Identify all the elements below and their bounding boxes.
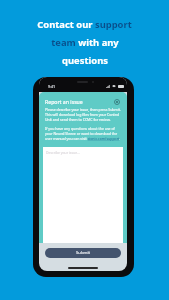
staticText: Describe your issue...	[46, 150, 80, 155]
staticText: If you have any questions about the use …	[45, 126, 123, 141]
button[interactable]: Submit	[45, 248, 121, 258]
button[interactable]: Close	[112, 97, 121, 106]
staticText: Submit	[76, 250, 90, 256]
staticText: 9:41	[48, 84, 56, 89]
staticText: Please describe your issue, then press S…	[45, 107, 123, 122]
staticText: questions	[62, 54, 108, 67]
staticText: Report an issue	[45, 98, 83, 105]
staticText: team with any	[51, 36, 119, 49]
staticText: Contact our support	[37, 18, 132, 31]
